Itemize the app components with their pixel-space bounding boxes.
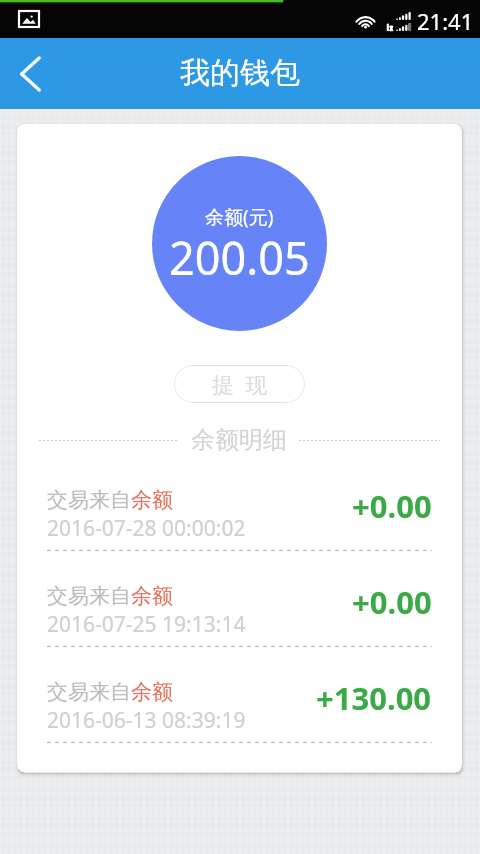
staticText: 21:41 bbox=[417, 6, 474, 36]
button[interactable]: 交易来自余额 bbox=[17, 487, 462, 583]
staticText: +0.00 bbox=[352, 581, 432, 623]
button[interactable]: 提 现 bbox=[174, 365, 305, 403]
staticText: 200.05 bbox=[169, 227, 310, 288]
staticText: 余额明细 bbox=[191, 425, 287, 455]
staticText: 交易来自余额 bbox=[47, 679, 173, 705]
staticText: +0.00 bbox=[352, 485, 432, 527]
staticText: 余额(元) bbox=[205, 204, 274, 230]
staticText: 2016-07-25 19:13:14 bbox=[47, 610, 246, 639]
button[interactable]: Back bbox=[0, 38, 64, 109]
staticText: 我的钱包 bbox=[180, 54, 300, 92]
staticText: 2016-07-28 00:00:02 bbox=[47, 514, 246, 543]
staticText: 交易来自余额 bbox=[47, 583, 173, 609]
staticText: 提 现 bbox=[212, 369, 268, 399]
staticText: +130.00 bbox=[316, 677, 432, 719]
button[interactable]: 交易来自余额 bbox=[17, 679, 462, 772]
staticText: 2016-06-13 08:39:19 bbox=[47, 706, 246, 735]
button[interactable]: 交易来自余额 bbox=[17, 583, 462, 679]
staticText: 交易来自余额 bbox=[47, 487, 173, 513]
